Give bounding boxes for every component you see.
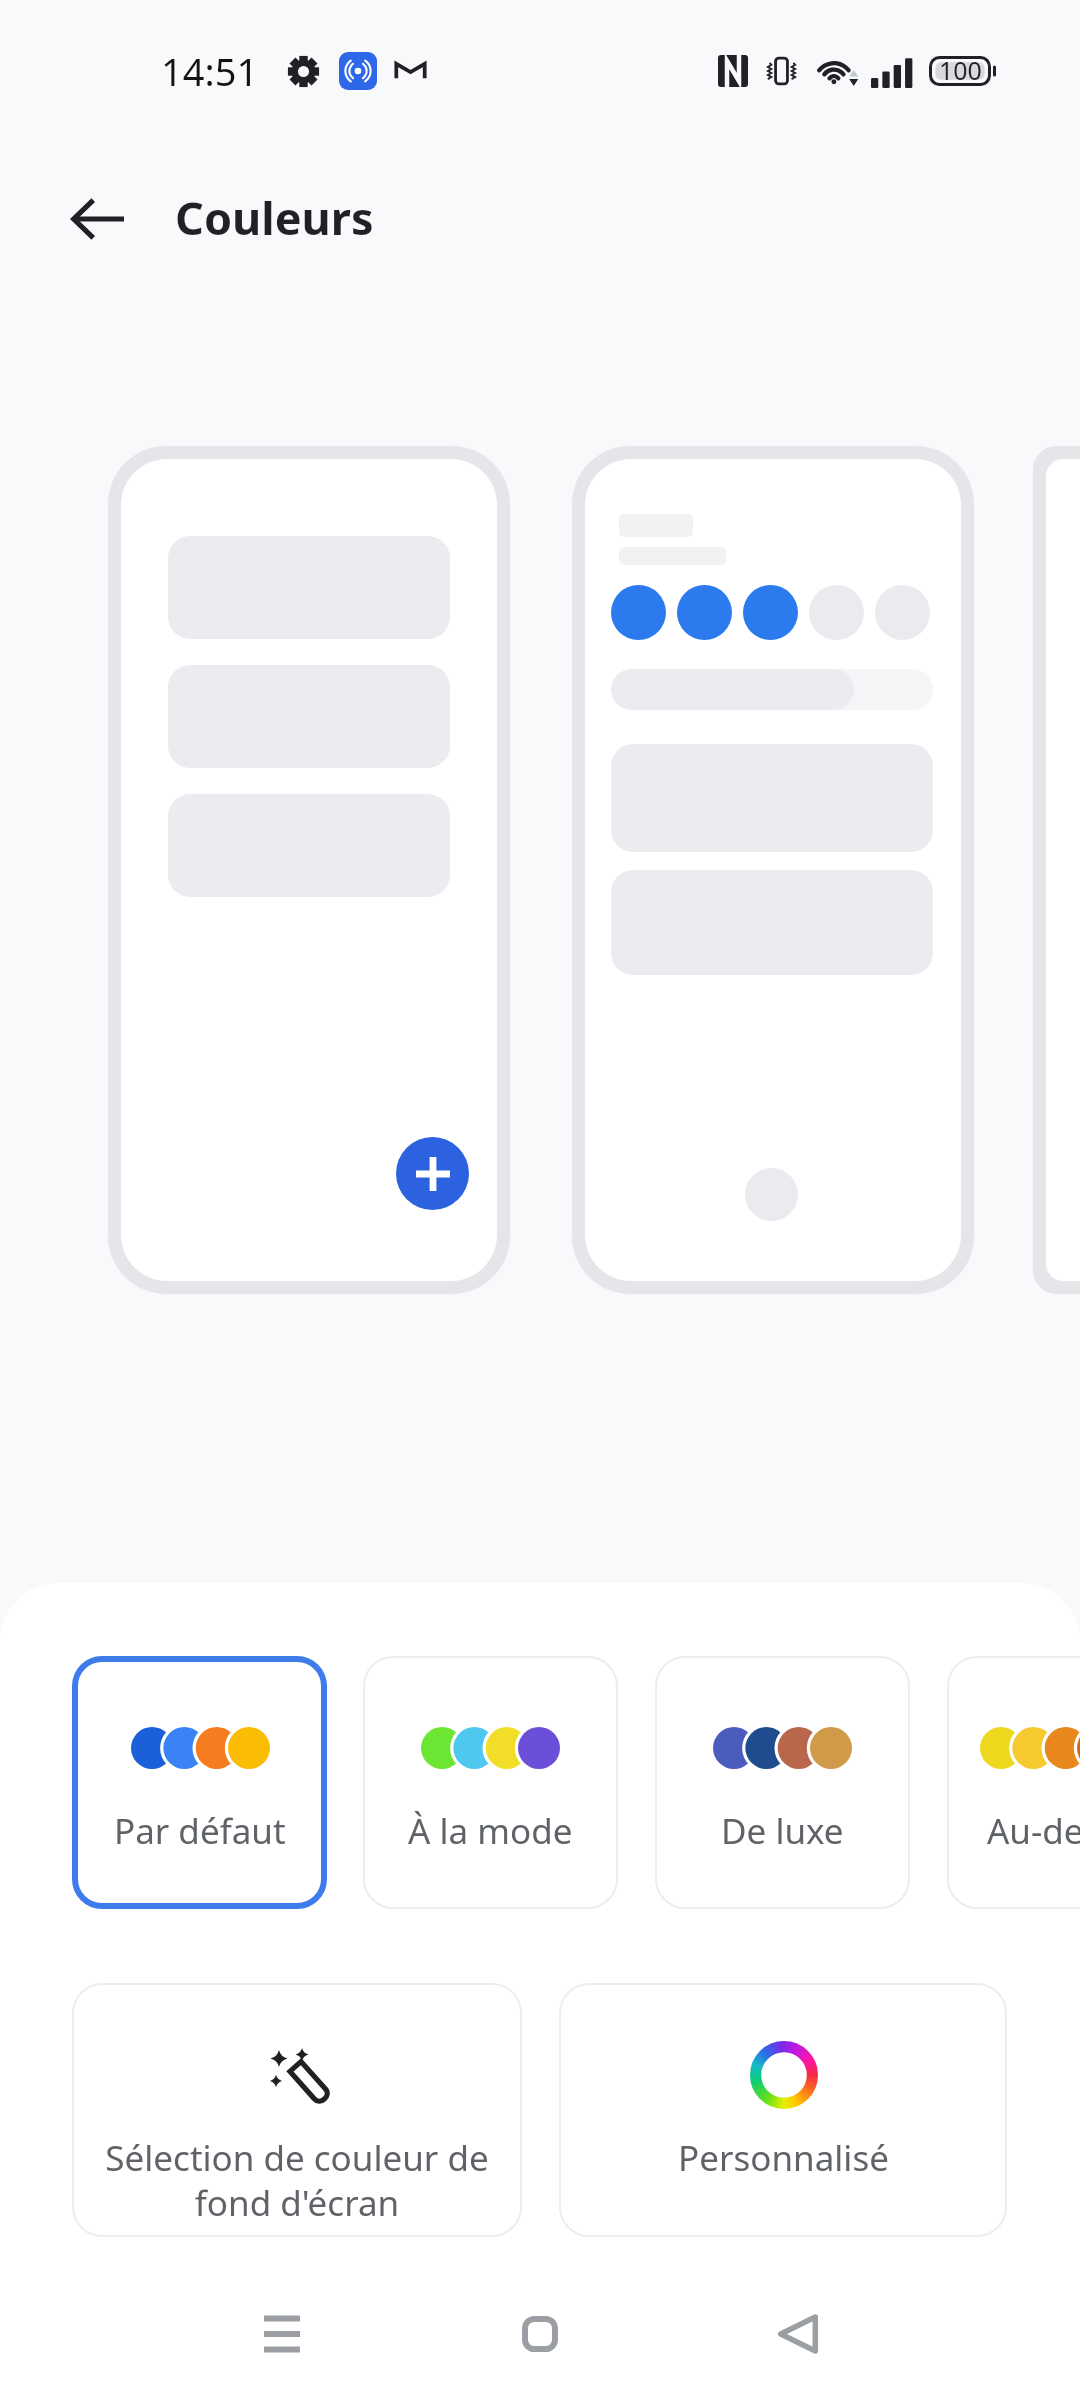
staticText: 14:51 (161, 45, 259, 97)
staticText: De luxe (721, 1807, 844, 1855)
button[interactable]: Au-delà (947, 1656, 1080, 1909)
staticText: 100 (939, 53, 982, 87)
staticText: Couleurs (175, 187, 374, 248)
button[interactable]: Home (490, 2284, 590, 2384)
button[interactable]: Dark theme preview (585, 459, 961, 1281)
button[interactable]: De luxe (655, 1656, 910, 1909)
staticText: Personnalisé (678, 2134, 889, 2182)
staticText: À la mode (408, 1807, 573, 1855)
button[interactable]: Recents (232, 2284, 332, 2384)
button[interactable]: Back (748, 2284, 848, 2384)
button[interactable]: Add (396, 1137, 469, 1210)
staticText: Sélection de couleur de fond d'écran (105, 2134, 489, 2226)
staticText: Au-delà (987, 1807, 1080, 1855)
button[interactable]: Light theme preview (121, 459, 497, 1281)
button[interactable]: Sélection de couleur de fond d'écran (72, 1983, 522, 2237)
button[interactable]: Back (57, 177, 137, 257)
button[interactable]: À la mode (363, 1656, 618, 1909)
button[interactable]: Par défaut (72, 1656, 327, 1909)
staticText: Par défaut (114, 1807, 286, 1855)
button[interactable]: Personnalisé (559, 1983, 1007, 2237)
